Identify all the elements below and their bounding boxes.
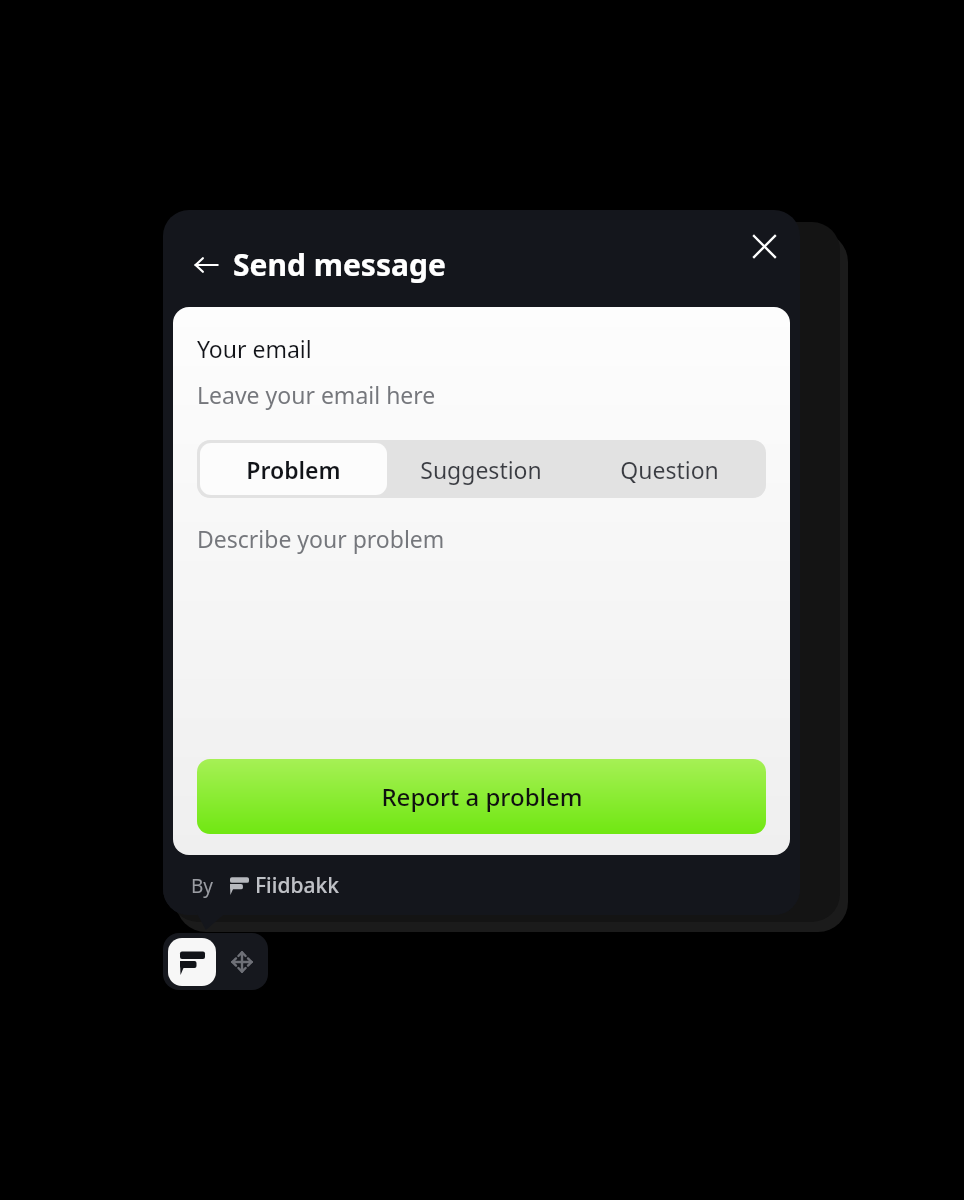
button[interactable]: Leave your email here — [197, 379, 766, 410]
staticText: Describe your problem — [197, 523, 445, 554]
staticText: Send message — [233, 244, 446, 285]
button[interactable]: Question — [575, 443, 763, 495]
button[interactable]: By — [185, 867, 345, 904]
button[interactable]: Problem — [200, 443, 387, 495]
staticText: Leave your email here — [197, 379, 436, 410]
staticText: Report a problem — [381, 780, 583, 813]
other: Back — [193, 252, 219, 278]
button[interactable]: Back — [183, 238, 456, 291]
button[interactable]: Report a problem — [197, 759, 766, 834]
staticText: Problem — [246, 454, 341, 485]
button[interactable]: Close — [742, 224, 786, 268]
staticText: Fiidbakk — [255, 871, 339, 900]
button[interactable]: Open feedback widget — [168, 938, 216, 986]
staticText: Question — [620, 454, 719, 485]
staticText: By — [191, 873, 214, 899]
button[interactable]: Move widget — [222, 942, 262, 982]
button[interactable]: Describe your problem — [197, 523, 766, 759]
button[interactable]: Suggestion — [387, 443, 575, 495]
staticText: Your email — [197, 333, 312, 364]
staticText: Suggestion — [420, 454, 542, 485]
